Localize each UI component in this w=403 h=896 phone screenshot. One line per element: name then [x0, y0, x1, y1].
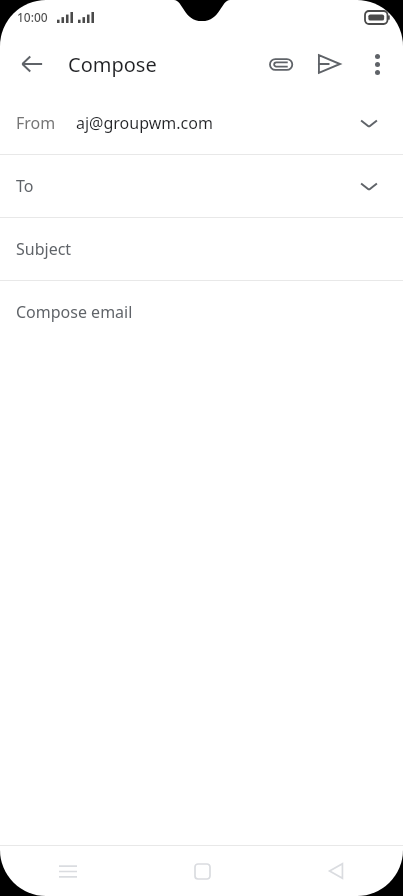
staticText: Subject — [16, 238, 72, 260]
button[interactable]: Subject — [0, 218, 403, 280]
button[interactable]: Expand — [347, 101, 391, 145]
staticText: To — [16, 175, 34, 197]
button[interactable]: Send — [305, 40, 353, 88]
button[interactable]: Back — [269, 846, 403, 896]
button[interactable]: To — [0, 155, 403, 217]
button[interactable]: Back — [8, 40, 56, 88]
button[interactable]: Home — [135, 846, 269, 896]
button[interactable]: More options — [353, 40, 401, 88]
staticText: aj@groupwm.com — [76, 112, 213, 134]
staticText: From — [16, 112, 56, 134]
staticText: Compose — [68, 51, 157, 78]
button[interactable]: Recent apps — [0, 846, 135, 896]
button[interactable]: Compose email — [0, 281, 403, 343]
button[interactable]: From — [0, 92, 403, 154]
button[interactable]: Expand — [347, 164, 391, 208]
staticText: 10:00 — [17, 9, 48, 25]
button[interactable]: Attach file — [257, 40, 305, 88]
staticText: Compose email — [16, 301, 133, 323]
